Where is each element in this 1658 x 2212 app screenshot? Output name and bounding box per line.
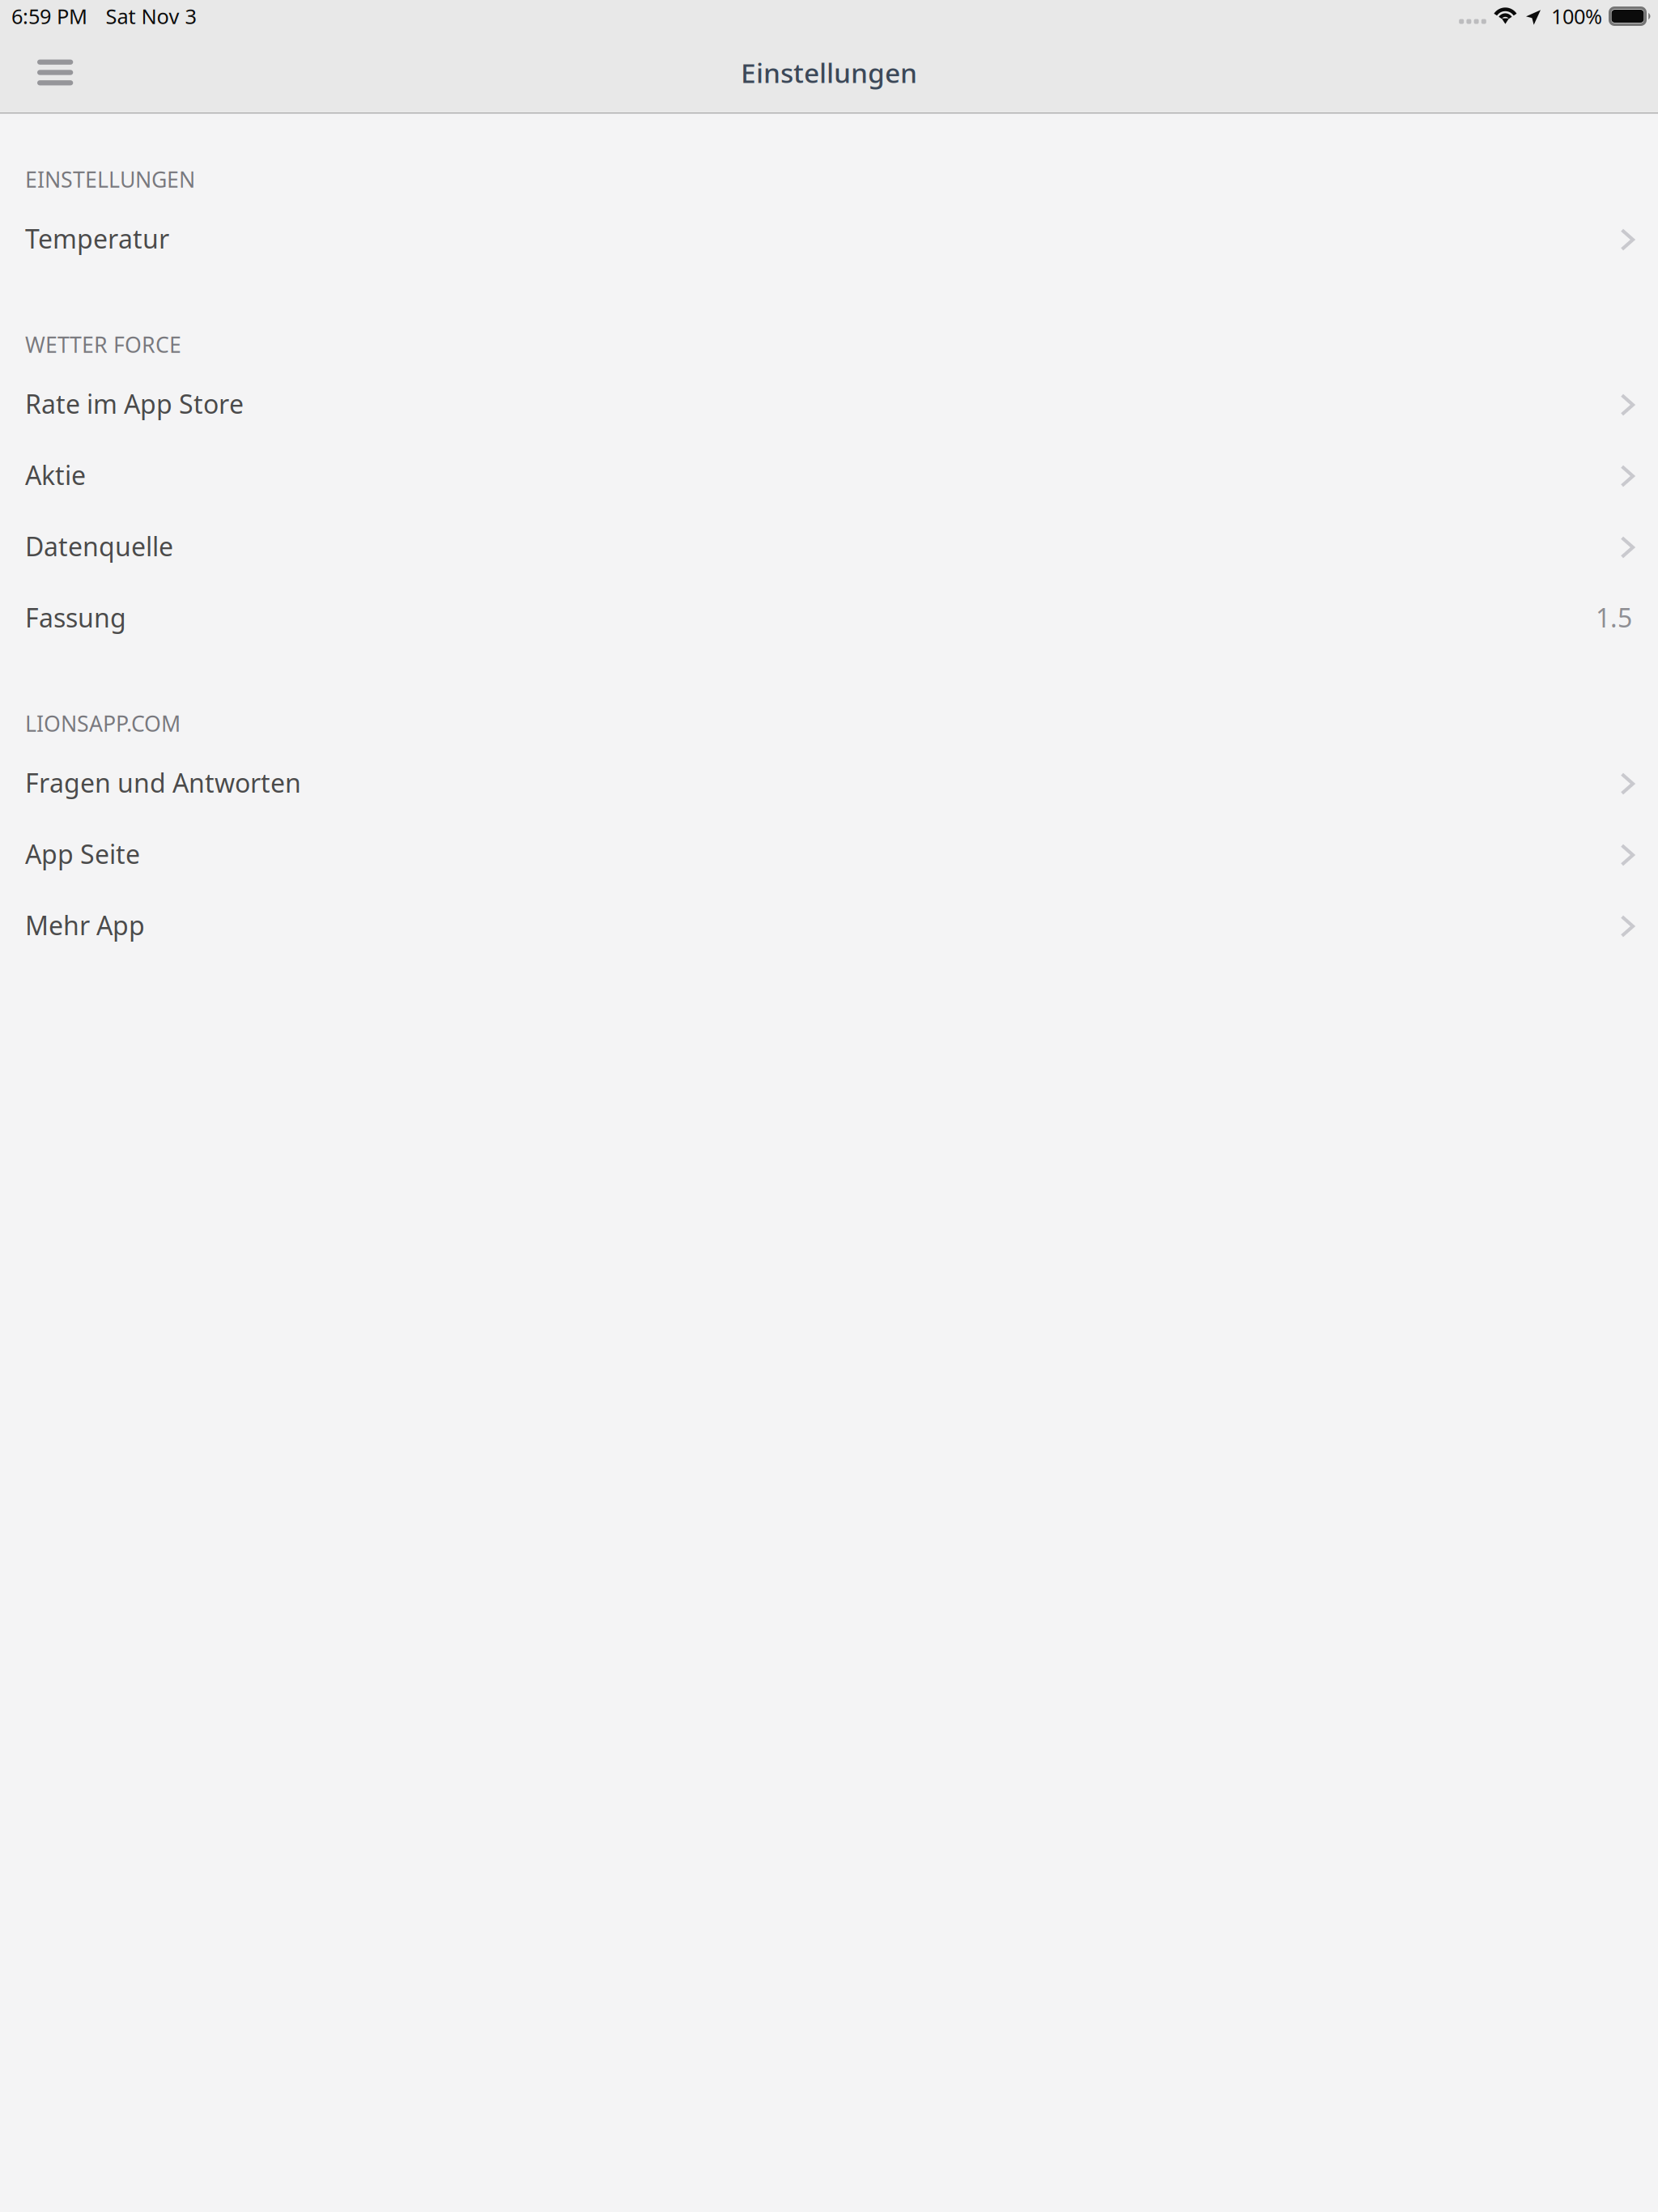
staticText: Rate im App Store [25, 386, 244, 421]
button[interactable]: Aktie [0, 439, 1658, 510]
button[interactable]: Datenquelle [0, 510, 1658, 582]
button[interactable]: Menu [0, 32, 97, 113]
staticText: Datenquelle [25, 529, 173, 563]
button[interactable]: Mehr App [0, 889, 1658, 961]
staticText: Aktie [25, 458, 86, 492]
button[interactable]: Temperatur [0, 203, 1658, 274]
staticText: EINSTELLUNGEN [25, 165, 195, 194]
staticText: App Seite [25, 837, 140, 871]
staticText: 100% [1551, 3, 1602, 30]
staticText: Mehr App [25, 908, 145, 942]
staticText: Sat Nov 3 [106, 3, 196, 30]
staticText: LIONSAPP.COM [25, 709, 181, 738]
staticText: 1.5 [1596, 600, 1632, 635]
staticText: Fragen und Antworten [25, 765, 301, 800]
staticText: WETTER FORCE [25, 330, 181, 359]
button[interactable]: App Seite [0, 818, 1658, 889]
button[interactable]: Rate im App Store [0, 368, 1658, 439]
button[interactable]: Fragen und Antworten [0, 747, 1658, 818]
staticText: Temperatur [25, 221, 169, 256]
staticText: 6:59 PM [11, 3, 87, 30]
staticText: Fassung [25, 600, 126, 635]
staticText: Einstellungen [741, 55, 917, 90]
